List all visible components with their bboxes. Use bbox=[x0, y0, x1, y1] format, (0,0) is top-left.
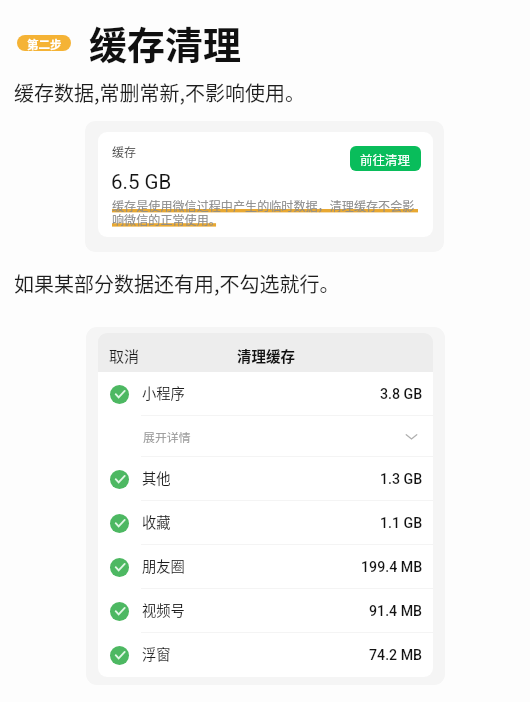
staticText: 1.3 GB bbox=[380, 471, 423, 488]
button[interactable]: 展开详情 bbox=[98, 416, 433, 457]
staticText: 缓存数据,常删常新,不影响使用。 bbox=[14, 78, 306, 107]
other: 展开详情 bbox=[404, 429, 419, 444]
button[interactable]: 其他 bbox=[98, 457, 433, 501]
staticText: 清理缓存 bbox=[237, 345, 295, 366]
staticText: 3.8 GB bbox=[380, 386, 423, 403]
button[interactable]: 前往清理 bbox=[350, 146, 421, 171]
staticText: 展开详情 bbox=[143, 428, 404, 445]
staticText: 缓存是使用微信过程中产生的临时数据，清理缓存不会影响微信的正常使用。 bbox=[112, 197, 418, 229]
button[interactable]: 收藏 bbox=[98, 501, 433, 545]
button[interactable]: 取消 bbox=[109, 345, 140, 367]
button[interactable]: 浮窗 bbox=[98, 633, 433, 677]
staticText: 6.5 GB bbox=[111, 170, 172, 194]
button[interactable]: 视频号 bbox=[98, 589, 433, 633]
staticText: 缓存 bbox=[112, 143, 137, 160]
staticText: 74.2 MB bbox=[369, 647, 423, 664]
staticText: 收藏 bbox=[142, 511, 380, 532]
button[interactable]: 朋友圈 bbox=[98, 545, 433, 589]
staticText: 其他 bbox=[142, 467, 380, 488]
staticText: 199.4 MB bbox=[361, 559, 423, 576]
button[interactable]: 第二步 bbox=[17, 35, 71, 51]
staticText: 视频号 bbox=[142, 599, 369, 620]
button[interactable]: 小程序 bbox=[98, 372, 433, 416]
staticText: 如果某部分数据还有用,不勾选就行。 bbox=[14, 269, 340, 298]
staticText: 小程序 bbox=[142, 382, 380, 403]
staticText: 前往清理 bbox=[360, 150, 411, 168]
staticText: 朋友圈 bbox=[142, 555, 361, 576]
staticText: 91.4 MB bbox=[369, 603, 423, 620]
staticText: 浮窗 bbox=[142, 643, 369, 664]
staticText: 1.1 GB bbox=[380, 515, 423, 532]
staticText: 缓存清理 bbox=[89, 15, 242, 70]
staticText: 第二步 bbox=[27, 36, 62, 51]
